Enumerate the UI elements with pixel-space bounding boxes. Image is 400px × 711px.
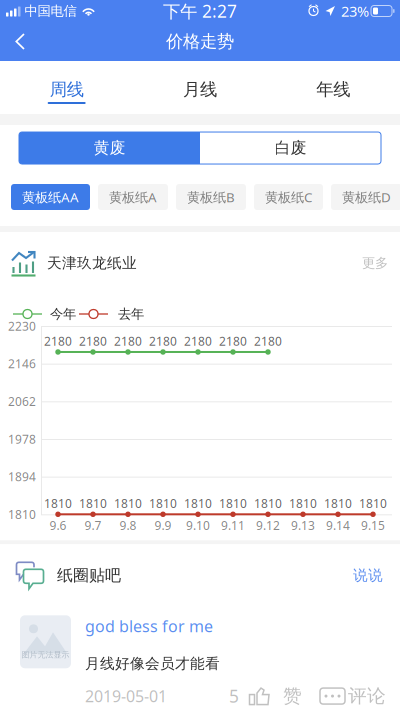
button[interactable]: 黄板纸C [254, 184, 323, 210]
staticText: 1810 [184, 495, 212, 511]
staticText: 2180 [184, 333, 212, 349]
button[interactable]: 月线 [133, 61, 267, 114]
staticText: 1810 [8, 506, 36, 522]
staticText: 9.14 [326, 517, 350, 533]
staticText: 1810 [324, 495, 352, 511]
staticText: 2180 [114, 333, 142, 349]
button[interactable]: 黄板纸D [331, 184, 400, 210]
button[interactable]: 纸圈贴吧 [0, 561, 121, 590]
staticText: 黄废 [93, 138, 125, 158]
staticText: 黄板纸AA [22, 188, 79, 206]
staticText: 5 [229, 685, 239, 708]
staticText: 下午 2:27 [163, 0, 237, 22]
staticText: 1810 [114, 495, 142, 511]
button[interactable]: 黄板纸AA [11, 184, 90, 210]
staticText: 9.8 [119, 517, 136, 533]
button[interactable]: 天津玖龙纸业 [0, 232, 400, 294]
staticText: 2146 [8, 356, 36, 372]
staticText: 周线 [50, 79, 84, 100]
staticText: 1810 [289, 495, 317, 511]
staticText: 黄板纸A [109, 188, 157, 206]
staticText: 9.7 [84, 517, 101, 533]
staticText: 赞 [283, 685, 302, 707]
staticText: 年线 [316, 79, 350, 100]
button[interactable]: 黄板纸B [176, 184, 246, 210]
staticText: 9.15 [361, 517, 385, 533]
staticText: 评论 [348, 685, 386, 707]
button[interactable]: 说说 [346, 558, 390, 592]
staticText: 9.6 [49, 517, 66, 533]
staticText: 9.13 [291, 517, 315, 533]
staticText: 2019-05-01 [85, 685, 167, 707]
staticText: 2180 [149, 333, 177, 349]
staticText: 9.11 [221, 517, 245, 533]
staticText: 9.12 [256, 517, 280, 533]
staticText: 1810 [79, 495, 107, 511]
button[interactable]: 年线 [267, 61, 400, 114]
staticText: 2062 [8, 393, 36, 409]
staticText: 白废 [274, 138, 306, 158]
button[interactable]: 周线 [0, 61, 133, 114]
staticText: 月线 [183, 79, 217, 100]
staticText: 月线好像会员才能看 [85, 654, 220, 672]
staticText: 2180 [44, 333, 72, 349]
staticText: 1894 [8, 469, 36, 485]
staticText: 9.9 [154, 517, 171, 533]
staticText: 图片无法显示 [21, 650, 69, 660]
staticText: 1810 [149, 495, 177, 511]
staticText: 1810 [219, 495, 247, 511]
staticText: 1810 [254, 495, 282, 511]
staticText: 1810 [44, 495, 72, 511]
staticText: 说说 [353, 566, 383, 584]
button[interactable]: 黄板纸A [98, 184, 168, 210]
button[interactable]: 图片无法显示 [0, 606, 400, 711]
staticText: 2180 [79, 333, 107, 349]
staticText: god bless for me [85, 615, 213, 636]
staticText: 2230 [8, 318, 36, 334]
staticText: 今年 [50, 306, 76, 322]
staticText: 黄板纸D [342, 188, 391, 206]
staticText: 更多 [362, 255, 388, 271]
staticText: 9.10 [186, 517, 210, 533]
staticText: 1978 [8, 431, 36, 447]
staticText: 23% [341, 1, 369, 21]
button[interactable]: 白废 [200, 132, 381, 164]
button[interactable]: 黄废 [19, 132, 200, 164]
staticText: 1810 [359, 495, 387, 511]
staticText: 2180 [219, 333, 247, 349]
staticText: 纸圈贴吧 [57, 565, 121, 585]
staticText: 黄板纸C [265, 188, 312, 206]
staticText: 2180 [254, 333, 282, 349]
staticText: 价格走势 [166, 31, 234, 52]
button[interactable]: Back [0, 22, 40, 61]
staticText: 中国电信 [24, 3, 76, 19]
staticText: 黄板纸B [187, 188, 235, 206]
staticText: 天津玖龙纸业 [47, 254, 137, 272]
staticText: 去年 [118, 306, 144, 322]
